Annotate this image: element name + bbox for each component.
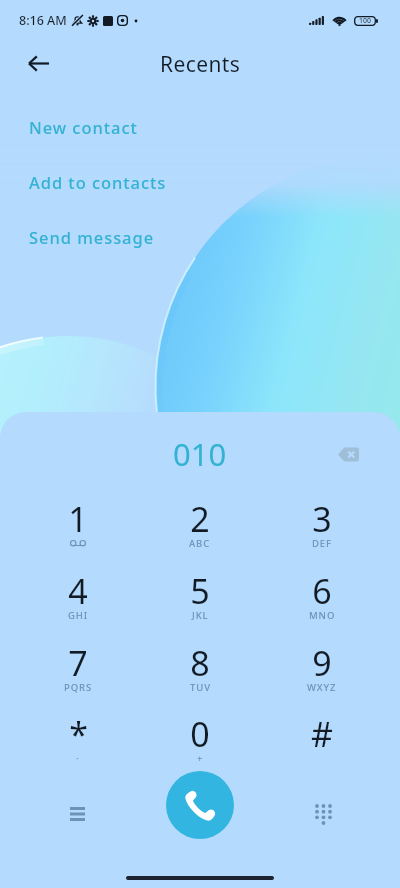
button[interactable]: Call	[166, 771, 234, 839]
button[interactable]: New contact	[29, 116, 138, 138]
staticText: 010	[173, 433, 227, 475]
button[interactable]: 9	[266, 640, 378, 706]
staticText: MNO	[309, 609, 336, 622]
button[interactable]: Send message	[29, 226, 155, 248]
button[interactable]: 6	[266, 568, 378, 634]
button[interactable]: 4	[22, 568, 134, 634]
staticText: 5	[190, 568, 210, 614]
button[interactable]: Call log	[57, 794, 97, 834]
staticText: ·	[76, 752, 80, 765]
button[interactable]: 2	[144, 496, 256, 562]
button[interactable]: 5	[144, 568, 256, 634]
staticText: Recents	[160, 50, 241, 79]
staticText: Add to contacts	[29, 171, 167, 193]
button[interactable]: *	[22, 711, 134, 777]
staticText: New contact	[29, 116, 138, 138]
button[interactable]: Backspace	[329, 435, 367, 473]
staticText: DEF	[312, 537, 332, 550]
staticText: WXYZ	[307, 681, 337, 694]
staticText: ABC	[189, 537, 211, 550]
staticText: PQRS	[64, 681, 93, 694]
staticText: 8	[190, 640, 210, 686]
button[interactable]: Dialpad	[303, 794, 343, 834]
staticText: +	[197, 752, 204, 765]
staticText: 4	[68, 568, 88, 614]
button[interactable]: 1	[22, 496, 134, 562]
staticText: 100	[359, 16, 372, 26]
staticText: 2	[190, 496, 210, 542]
button[interactable]: 8	[144, 640, 256, 706]
staticText: 1	[68, 496, 88, 542]
button[interactable]: Back	[18, 43, 58, 83]
staticText: JKL	[192, 609, 209, 622]
staticText: 8:16 AM	[19, 12, 67, 29]
staticText: 3	[312, 496, 332, 542]
staticText: TUV	[190, 681, 211, 694]
staticText: 0	[190, 711, 210, 757]
staticText: 9	[312, 640, 332, 686]
staticText: *	[69, 711, 88, 757]
button[interactable]: 7	[22, 640, 134, 706]
staticText: 7	[68, 640, 88, 686]
button[interactable]: #	[266, 711, 378, 777]
button[interactable]: 3	[266, 496, 378, 562]
button[interactable]: Add to contacts	[29, 171, 167, 193]
button[interactable]: 0	[144, 711, 256, 777]
staticText: GHI	[68, 609, 89, 622]
staticText: 6	[312, 568, 332, 614]
staticText: Send message	[29, 226, 155, 248]
staticText: #	[311, 711, 333, 757]
